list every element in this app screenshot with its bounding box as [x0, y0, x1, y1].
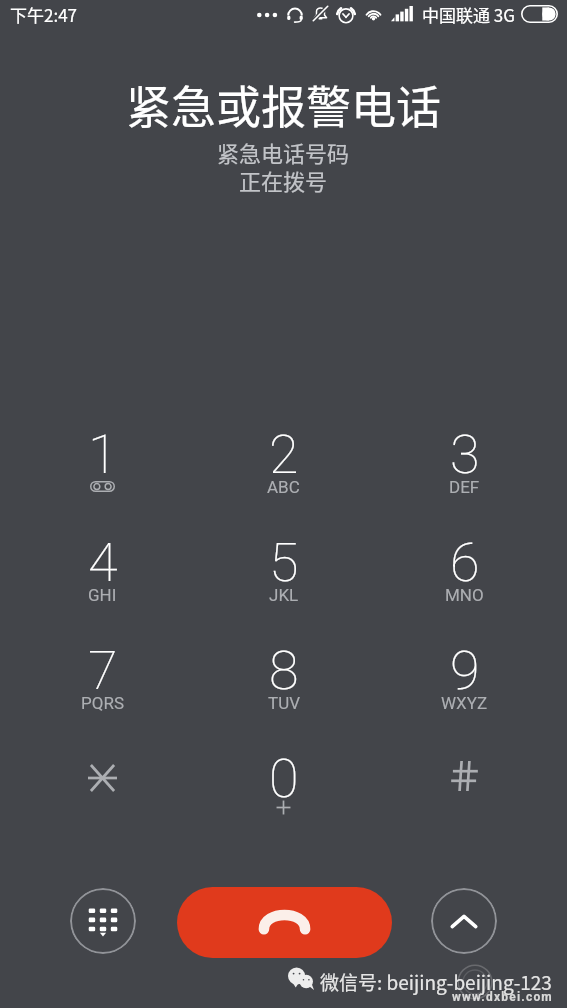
staticText: DEF [449, 477, 480, 497]
staticText: 微信号: beijing-beijing-123 [320, 968, 552, 996]
staticText: 紧急或报警电话 [126, 72, 442, 137]
staticText: 1 [88, 423, 118, 486]
staticText: 5 [269, 531, 299, 594]
staticText: 7 [88, 639, 118, 702]
button[interactable]: 0 [193, 747, 374, 855]
staticText: 中国联通 3G [422, 2, 515, 27]
button[interactable]: 2 [193, 423, 374, 531]
staticText: 8 [269, 639, 299, 702]
staticText: 6 [450, 531, 480, 594]
staticText: WXYZ [441, 693, 488, 713]
button[interactable]: Star [12, 747, 193, 855]
staticText: 下午2:47 [10, 2, 78, 27]
staticText: 0 [269, 747, 299, 810]
button[interactable]: Expand [431, 888, 497, 954]
button[interactable]: 4 [12, 531, 193, 639]
button[interactable]: 6 [374, 531, 555, 639]
staticText: 4 [88, 531, 118, 594]
staticText: GHI [88, 585, 117, 605]
staticText: www.dxbei.com [452, 990, 553, 1004]
staticText: 9 [450, 639, 480, 702]
button[interactable]: 5 [193, 531, 374, 639]
staticText: JKL [269, 585, 299, 605]
button[interactable]: 1 [12, 423, 193, 531]
staticText: TUV [268, 693, 300, 713]
button[interactable]: End call [177, 887, 392, 958]
button[interactable]: 8 [193, 639, 374, 747]
button[interactable]: 7 [12, 639, 193, 747]
button[interactable]: Pound [374, 747, 555, 855]
button[interactable]: Show keypad [70, 888, 136, 954]
staticText: 2 [269, 423, 299, 486]
staticText: ABC [267, 477, 300, 497]
button[interactable]: 3 [374, 423, 555, 531]
staticText: 3 [450, 423, 480, 486]
button[interactable]: 9 [374, 639, 555, 747]
staticText: 紧急电话号码 [217, 136, 350, 168]
staticText: 正在拨号 [239, 164, 328, 196]
staticText: PQRS [81, 693, 124, 713]
staticText: MNO [445, 585, 484, 605]
